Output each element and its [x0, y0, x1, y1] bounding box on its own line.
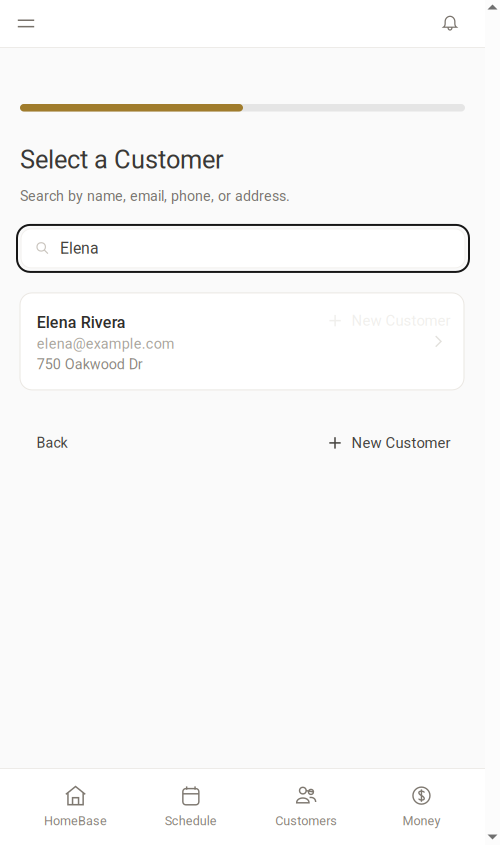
- button[interactable]: Back: [20, 429, 77, 457]
- button[interactable]: New Customer: [20, 293, 464, 390]
- staticText: Back: [36, 435, 67, 451]
- staticText: 750 Oakwood Dr: [37, 356, 143, 373]
- staticText: Elena Rivera: [37, 313, 126, 332]
- button[interactable]: Customers: [248, 780, 364, 834]
- button[interactable]: Menu: [8, 0, 44, 47]
- button[interactable]: Notifications: [432, 0, 468, 47]
- staticText: Search by name, email, phone, or address…: [20, 188, 290, 204]
- staticText: New Customer: [351, 434, 450, 451]
- staticText: Money: [402, 814, 440, 828]
- staticText: HomeBase: [44, 814, 107, 828]
- staticText: Select a Customer: [20, 145, 224, 175]
- button[interactable]: HomeBase: [18, 780, 133, 834]
- staticText: New Customer: [352, 312, 451, 329]
- staticText: Customers: [275, 814, 337, 828]
- staticText: elena@example.com: [37, 335, 175, 352]
- staticText: Elena: [60, 239, 99, 258]
- button[interactable]: New Customer: [329, 429, 450, 457]
- button[interactable]: Money: [364, 780, 479, 834]
- button[interactable]: Schedule: [133, 780, 248, 834]
- staticText: Schedule: [165, 814, 217, 828]
